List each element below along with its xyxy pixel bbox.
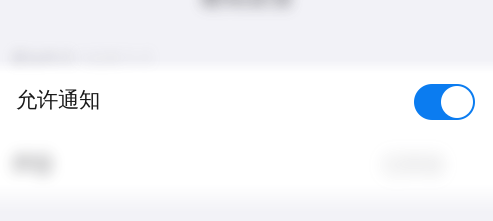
staticText: 允许通知	[16, 87, 100, 113]
button[interactable]: 允许通知	[0, 64, 493, 136]
